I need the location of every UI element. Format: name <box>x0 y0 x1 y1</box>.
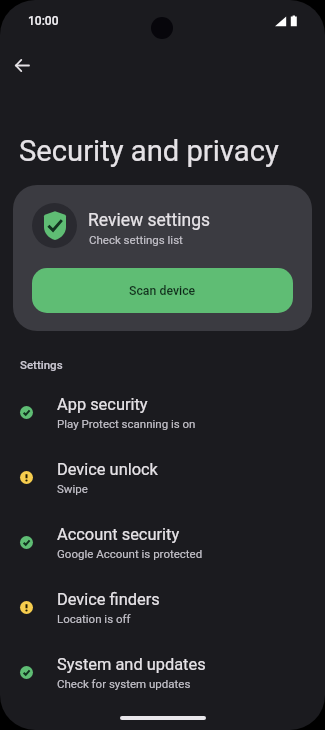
staticText: Security and privacy <box>19 134 279 168</box>
staticText: Device finders <box>57 590 160 609</box>
staticText: System and updates <box>57 655 206 674</box>
button[interactable]: Account security <box>0 507 325 569</box>
button[interactable]: System and updates <box>0 637 325 699</box>
staticText: 10:00 <box>28 14 59 28</box>
staticText: Scan device <box>129 284 196 298</box>
button[interactable]: Device finders <box>0 572 325 634</box>
button[interactable]: Back <box>2 45 42 85</box>
staticText: Review settings <box>88 210 210 231</box>
staticText: Account security <box>57 525 180 544</box>
button[interactable]: Device unlock <box>0 442 325 504</box>
staticText: Swipe <box>57 482 88 495</box>
staticText: Check for system updates <box>57 677 191 690</box>
button[interactable]: App security <box>0 377 325 439</box>
staticText: Google Account is protected <box>57 547 203 560</box>
staticText: Settings <box>20 358 63 371</box>
staticText: Device unlock <box>57 460 158 479</box>
staticText: Play Protect scanning is on <box>57 417 196 430</box>
staticText: Check settings list <box>89 233 183 246</box>
staticText: App security <box>57 395 148 414</box>
button[interactable]: Scan device <box>32 268 293 313</box>
staticText: Location is off <box>57 612 131 625</box>
